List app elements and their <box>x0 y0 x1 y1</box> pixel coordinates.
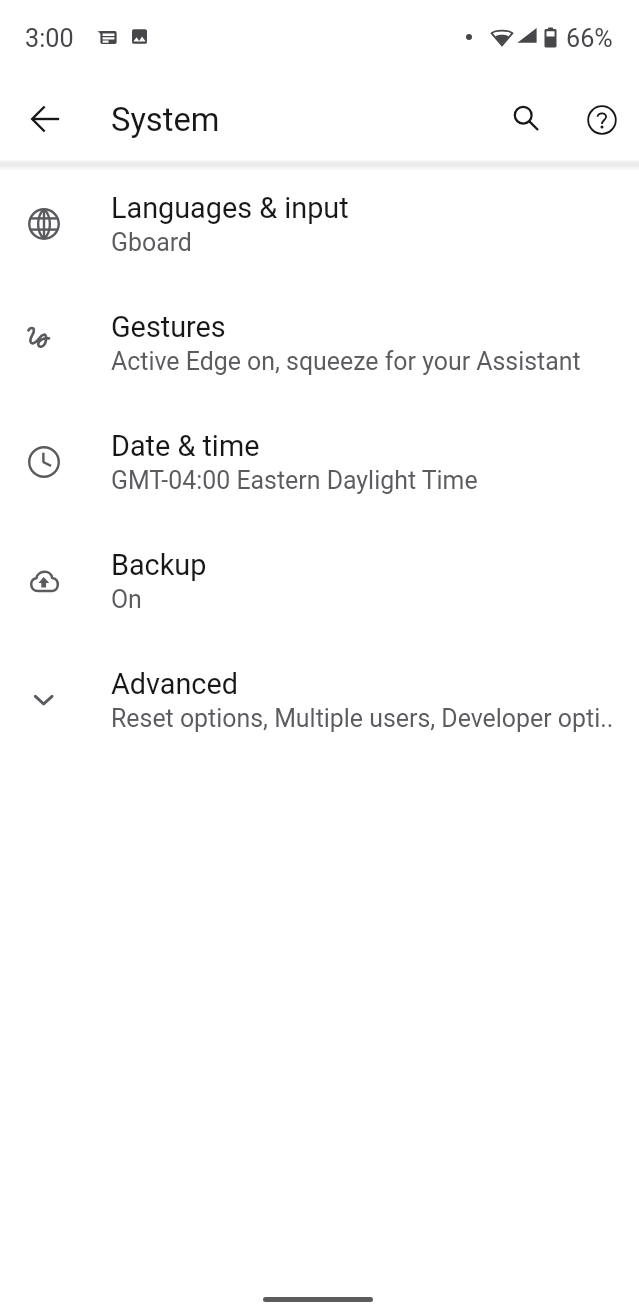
staticText: System <box>111 101 220 139</box>
staticText: 3:00 <box>25 24 74 54</box>
button[interactable]: Help <box>570 88 634 152</box>
staticText: GMT-04:00 Eastern Daylight Time <box>111 466 478 495</box>
button[interactable]: Backup <box>0 521 639 640</box>
staticText: Date & time <box>111 429 260 463</box>
staticText: Gestures <box>111 310 226 344</box>
button[interactable]: Advanced <box>0 640 639 759</box>
button[interactable]: Gestures <box>0 283 639 402</box>
staticText: 66% <box>566 24 613 54</box>
button[interactable]: Back <box>15 89 75 149</box>
staticText: Active Edge on, squeeze for your Assista… <box>111 347 581 376</box>
staticText: Advanced <box>111 667 238 701</box>
staticText: Languages & input <box>111 191 349 225</box>
button[interactable]: Date & time <box>0 402 639 521</box>
staticText: Backup <box>111 548 207 582</box>
staticText: Gboard <box>111 228 192 257</box>
button[interactable]: Search <box>494 86 558 150</box>
staticText: Reset options, Multiple users, Developer… <box>111 704 614 733</box>
staticText: On <box>111 585 142 614</box>
button[interactable]: Languages & input <box>0 164 639 283</box>
